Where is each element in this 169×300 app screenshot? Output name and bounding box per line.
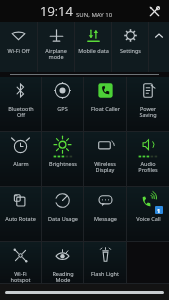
staticText: Voice Call [136, 215, 161, 222]
button[interactable]: Bluetooth Off [0, 77, 41, 132]
staticText: Auto Rotate [5, 215, 36, 222]
button[interactable]: Wireless Display [84, 132, 126, 187]
staticText: Brightness [49, 160, 77, 167]
staticText: Mobile data [78, 47, 109, 54]
button[interactable]: Alarm [0, 132, 41, 187]
button[interactable]: Flash Light [84, 242, 126, 284]
button[interactable]: Airplane mode [38, 22, 74, 72]
staticText: 1 [157, 207, 161, 214]
button[interactable]: GPS [42, 77, 83, 132]
button[interactable]: Float Caller [84, 77, 126, 132]
staticText: Reading Mode [52, 270, 74, 284]
staticText: Bluetooth Off [8, 105, 34, 119]
staticText: SUN, MAY 10 [76, 11, 113, 19]
button[interactable]: Settings [112, 22, 148, 72]
button[interactable]: Brightness [42, 132, 83, 187]
button[interactable]: Power Saving [127, 77, 169, 132]
button[interactable]: Audio Profiles [127, 132, 169, 187]
staticText: Wireless Display [94, 160, 116, 174]
button[interactable]: Message [84, 187, 126, 242]
button[interactable]: Reading Mode [42, 242, 83, 284]
staticText: GPS [57, 105, 68, 112]
staticText: Power Saving [139, 105, 157, 119]
button[interactable]: Auto Rotate [0, 187, 41, 242]
staticText: Audio Profiles [138, 160, 158, 174]
button[interactable]: Voice Call [127, 187, 169, 242]
staticText: Flash Light [91, 270, 119, 277]
staticText: 19:14 [40, 2, 73, 20]
button[interactable]: Drag handle [5, 291, 164, 294]
button[interactable]: Edit quick settings [146, 3, 162, 19]
staticText: Message [94, 215, 117, 222]
staticText: Data Usage [48, 215, 78, 222]
button[interactable]: Collapse [149, 22, 169, 72]
staticText: Airplane mode [45, 47, 67, 61]
button[interactable]: Data Usage [42, 187, 83, 242]
button[interactable]: Mobile data [75, 22, 111, 72]
button[interactable]: Wi-Fi Off [0, 22, 37, 72]
button[interactable]: Wi-Fi hotspot [0, 242, 41, 284]
staticText: Float Caller [91, 105, 120, 112]
staticText: Alarm [13, 160, 29, 167]
staticText: Wi-Fi hotspot [10, 270, 31, 284]
staticText: Settings [120, 47, 141, 54]
staticText: Wi-Fi Off [7, 47, 30, 54]
